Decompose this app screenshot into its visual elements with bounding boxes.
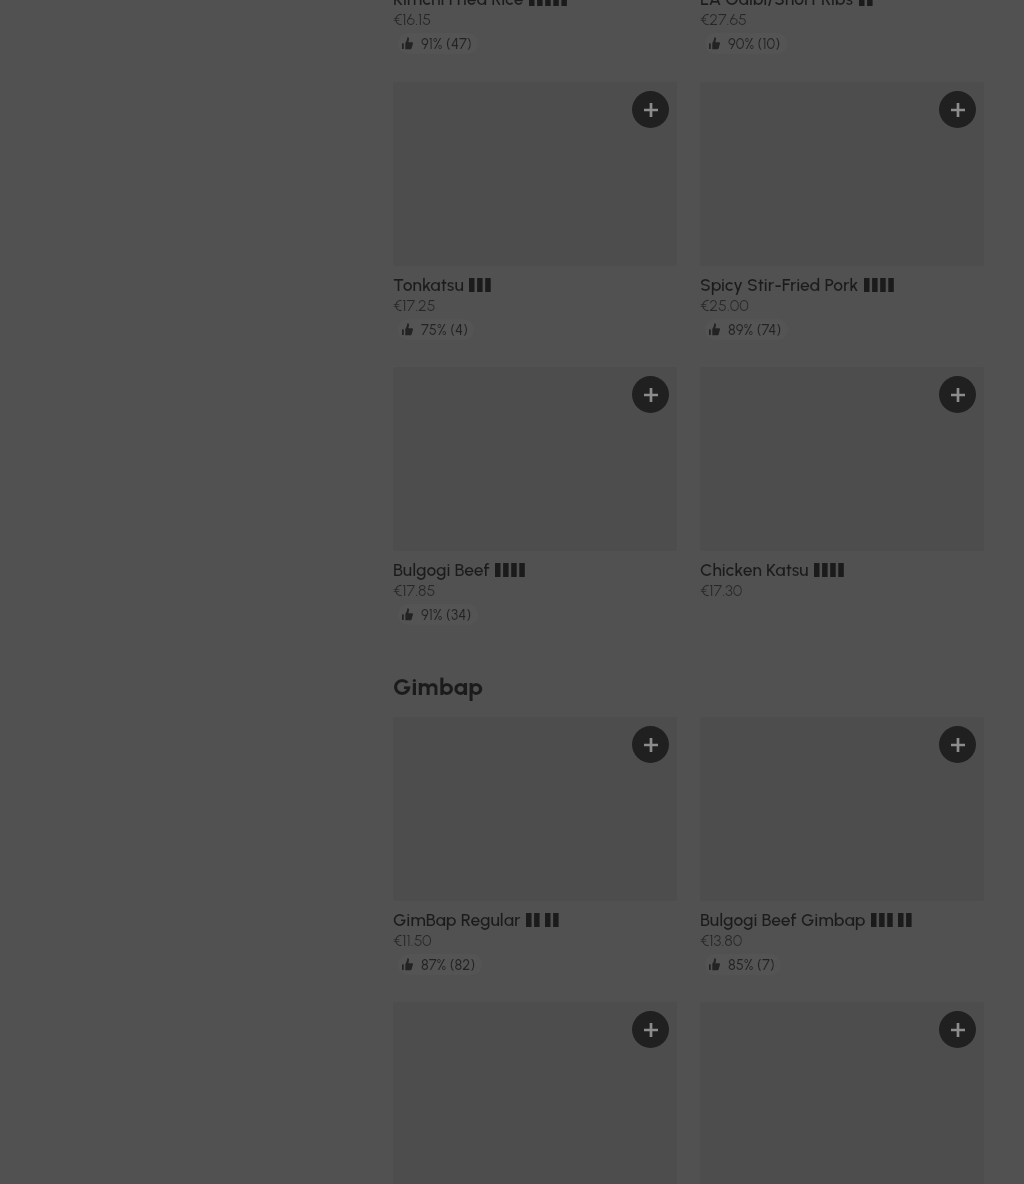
staticText: 89% (74) (728, 321, 782, 338)
button[interactable]: Add to order (700, 717, 984, 975)
button[interactable]: Add to order (393, 717, 677, 975)
staticText: €17.30 (700, 581, 743, 600)
button[interactable]: LA Galbi/Short Ribs (700, 0, 984, 54)
button[interactable]: Add to order (632, 91, 669, 128)
staticText: LA Galbi/Short Ribs (700, 0, 854, 9)
staticText: 87% (82) (421, 956, 476, 973)
staticText: €25.00 (700, 296, 749, 315)
staticText: €16.15 (393, 10, 432, 29)
staticText: €11.50 (393, 931, 432, 950)
button[interactable]: Add to order (393, 367, 677, 625)
button[interactable]: Add to order (393, 1002, 677, 1184)
button[interactable]: Add to order (939, 376, 976, 413)
button[interactable]: Add to order (939, 726, 976, 763)
staticText: 85% (7) (728, 956, 775, 973)
button[interactable]: Add to order (632, 376, 669, 413)
staticText: Bulgogi Beef Gimbap (700, 909, 866, 930)
staticText: Gimbap (393, 672, 483, 701)
staticText: 90% (10) (728, 35, 781, 52)
staticText: 75% (4) (421, 321, 468, 338)
staticText: €17.85 (393, 581, 436, 600)
staticText: €27.65 (700, 10, 747, 29)
button[interactable]: Add to order (632, 726, 669, 763)
button[interactable]: Add to order (632, 1011, 669, 1048)
staticText: €13.80 (700, 931, 743, 950)
button[interactable]: Add to order (939, 1011, 976, 1048)
staticText: Tonkatsu (393, 274, 464, 295)
button[interactable]: Kimchi Fried Rice (393, 0, 677, 54)
button[interactable]: Add to order (700, 367, 984, 600)
staticText: Bulgogi Beef (393, 559, 490, 580)
staticText: 91% (34) (421, 606, 472, 623)
staticText: Chicken Katsu (700, 559, 809, 580)
staticText: €17.25 (393, 296, 436, 315)
staticText: 91% (47) (421, 35, 472, 52)
staticText: Kimchi Fried Rice (393, 0, 524, 9)
button[interactable]: Add to order (393, 82, 677, 340)
button[interactable]: Add to order (700, 82, 984, 340)
button[interactable]: Add to order (939, 91, 976, 128)
staticText: Spicy Stir-Fried Pork (700, 274, 859, 295)
button[interactable]: Add to order (700, 1002, 984, 1184)
staticText: GimBap Regular (393, 909, 521, 930)
